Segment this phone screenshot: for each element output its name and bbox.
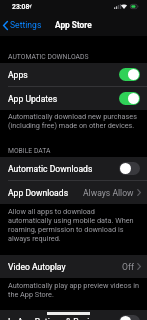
button[interactable]: Automatic Downloads bbox=[0, 157, 147, 180]
staticText: Settings bbox=[10, 20, 42, 30]
button[interactable]: In-App Ratings & Reviews bbox=[0, 310, 147, 320]
button[interactable]: App Downloads bbox=[0, 181, 147, 204]
staticText: Allow all apps to download automatically… bbox=[8, 207, 139, 243]
staticText: Apps bbox=[8, 70, 28, 80]
staticText: AUTOMATIC DOWNLOADS bbox=[8, 53, 89, 61]
staticText: Automatic Downloads bbox=[8, 164, 93, 174]
button[interactable]: Toggle off bbox=[119, 162, 140, 175]
staticText: App Updates bbox=[8, 94, 58, 104]
staticText: MOBILE DATA bbox=[8, 147, 51, 155]
button[interactable]: Video Autoplay bbox=[0, 255, 147, 278]
staticText: 23:08 bbox=[12, 3, 30, 11]
button[interactable]: Toggle on bbox=[119, 92, 140, 105]
staticText: Off bbox=[122, 262, 134, 272]
staticText: App Downloads bbox=[8, 188, 69, 198]
button[interactable]: App Updates bbox=[0, 87, 147, 110]
staticText: Video Autoplay bbox=[8, 262, 66, 272]
staticText: In-App Ratings & Reviews bbox=[8, 317, 105, 320]
button[interactable]: Toggle on bbox=[119, 68, 140, 81]
button[interactable]: Toggle off bbox=[119, 315, 140, 320]
staticText: Automatically play app preview videos in… bbox=[8, 281, 139, 299]
button[interactable]: Settings bbox=[0, 17, 48, 33]
staticText: Always Allow bbox=[83, 188, 134, 198]
staticText: App Store bbox=[55, 20, 92, 30]
staticText: Automatically download new purchases (in… bbox=[8, 112, 139, 130]
button[interactable]: Apps bbox=[0, 63, 147, 86]
